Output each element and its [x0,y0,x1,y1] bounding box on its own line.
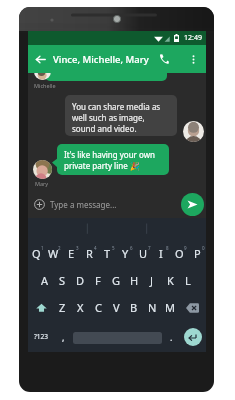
staticText: T [104,246,111,261]
button[interactable]: O [170,240,188,267]
staticText: B [130,300,138,315]
staticText: It's like having your own private party … [64,149,155,171]
button[interactable]: More options [184,50,202,68]
staticText: Z [59,300,66,315]
button[interactable]: R [80,240,98,267]
button[interactable]: Backspace [179,294,206,321]
button[interactable]: , [55,321,71,352]
button[interactable]: ?123 [28,321,54,352]
staticText: Mary [35,180,49,187]
button[interactable]: S [53,267,71,294]
staticText: Michelle [34,82,56,89]
button[interactable]: B [125,294,143,321]
staticText: 7 [148,245,151,251]
button[interactable]: J [143,267,161,294]
button[interactable]: Enter [180,321,206,352]
button[interactable]: M [161,294,179,321]
staticText: M [165,300,175,315]
button[interactable]: Call [153,48,175,70]
staticText: H [130,273,139,288]
staticText: ?123 [34,332,48,341]
button[interactable]: P [188,240,206,267]
staticText: 5 [112,245,115,251]
button[interactable]: Send [181,193,204,216]
staticText: L [185,273,191,288]
staticText: . [170,331,173,343]
button[interactable]: Z [54,294,71,321]
button[interactable]: E [62,240,80,267]
button[interactable]: G [107,267,125,294]
button[interactable]: L [179,267,197,294]
staticText: X [77,300,84,315]
staticText: You can share media as well such as imag… [72,101,161,134]
button[interactable]: You can share media as well such as imag… [65,95,177,136]
button[interactable]: Shift [28,294,54,321]
staticText: 3 [76,245,79,251]
staticText: Vince, Michelle, Mary [53,53,149,66]
staticText: 6 [130,245,133,251]
button[interactable]: D [71,267,89,294]
button[interactable]: . [164,321,179,352]
staticText: R [86,246,93,261]
staticText: 4 [94,245,97,251]
staticText: Type a message... [50,199,117,210]
button[interactable]: Q [28,240,45,267]
staticText: 1 [41,245,44,251]
staticText: 2 [58,245,61,251]
staticText: N [148,300,157,315]
button[interactable]: I [152,240,170,267]
staticText: G [112,273,121,288]
button[interactable]: Y [116,240,134,267]
staticText: E [68,246,75,261]
staticText: A [41,273,49,288]
staticText: Y [122,246,129,261]
button[interactable]: V [107,294,125,321]
button[interactable]: N [143,294,161,321]
staticText: S [59,273,66,288]
button[interactable]: Back [30,49,50,69]
staticText: D [76,273,85,288]
staticText: O [175,246,184,261]
staticText: J [150,273,154,288]
button[interactable]: U [134,240,152,267]
staticText: , [62,331,65,343]
staticText: K [167,273,174,288]
staticText: 0 [202,245,205,251]
button[interactable]: F [89,267,107,294]
button[interactable]: It's like having your own private party … [57,144,169,175]
button[interactable]: X [71,294,89,321]
button[interactable]: T [98,240,116,267]
button[interactable] [45,58,167,81]
staticText: P [194,246,201,261]
staticText: I [159,246,163,261]
staticText: F [95,273,101,288]
staticText: W [48,246,59,261]
button[interactable]: Attach [32,197,46,211]
staticText: V [113,300,120,315]
staticText: U [139,246,148,261]
button[interactable]: K [161,267,179,294]
button[interactable]: W [45,240,62,267]
staticText: 9 [184,245,187,251]
staticText: Q [32,246,41,261]
staticText: C [95,300,102,315]
button[interactable]: A [36,267,53,294]
button[interactable]: H [125,267,143,294]
staticText: 8 [166,245,169,251]
staticText: 12:49 [184,33,202,43]
button[interactable]: C [89,294,107,321]
